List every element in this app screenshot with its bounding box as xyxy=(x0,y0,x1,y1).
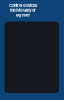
staticText: individually or xyxy=(10,8,36,13)
staticText: together xyxy=(15,13,30,17)
staticText: Control devices xyxy=(9,3,37,8)
